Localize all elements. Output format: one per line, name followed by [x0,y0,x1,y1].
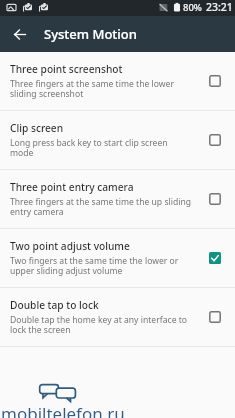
staticText: Double tap the home key at any interface… [10,314,192,336]
staticText: Long press back key to start clip screen… [10,137,192,159]
button[interactable]: Toggle setting [205,189,225,209]
staticText: Three point entry camera [10,180,134,194]
staticText: 80% [183,1,202,14]
button[interactable]: Clip screen [0,111,235,169]
staticText: mobiltelefon.ru [1,402,125,418]
staticText: System Motion [44,25,137,43]
button[interactable]: Double tap to lock [0,288,235,346]
staticText: Double tap to lock [10,298,99,312]
button[interactable]: Three point entry camera [0,170,235,228]
staticText: Two point adjust volume [10,239,130,253]
staticText: Clip screen [10,121,64,135]
button[interactable]: Two point adjust volume [0,229,235,287]
button[interactable]: Toggle setting [205,130,225,150]
button[interactable]: Back [0,16,36,52]
button[interactable]: Toggle setting [205,248,225,268]
button[interactable]: Three point screenshot [0,52,235,110]
button[interactable]: Toggle setting [205,307,225,327]
staticText: Three fingers at the same time the up sl… [10,196,192,218]
button[interactable]: Toggle setting [205,71,225,91]
staticText: Three fingers at the same time the lower… [10,78,192,100]
staticText: 23:21 [206,0,233,14]
staticText: Two fingers at the same time the lower o… [10,255,192,277]
staticText: Three point screenshot [10,62,123,76]
